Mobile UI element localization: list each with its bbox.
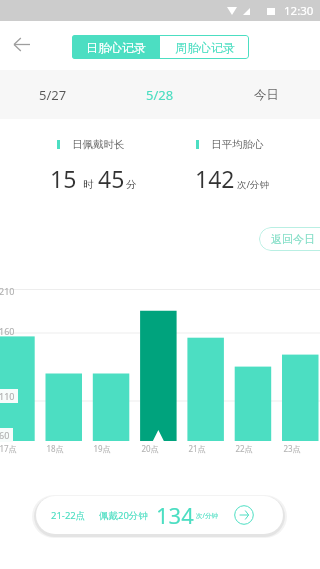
staticText: 45: [98, 163, 125, 194]
staticText: 今日: [254, 87, 279, 103]
staticText: 日平均胎心: [211, 138, 264, 151]
staticText: 日胎心记录: [86, 40, 146, 55]
button[interactable]: 21-22点: [36, 496, 283, 534]
button[interactable]: 日胎心记录: [72, 35, 160, 59]
button[interactable]: 返回今日: [259, 227, 320, 251]
staticText: 时: [83, 178, 94, 191]
staticText: 22点: [235, 443, 253, 454]
staticText: 分: [126, 178, 137, 191]
staticText: 19点: [93, 443, 111, 454]
staticText: 17点: [0, 443, 17, 454]
staticText: 周胎心记录: [175, 40, 235, 55]
staticText: 23点: [283, 443, 301, 454]
staticText: 21-22点: [51, 509, 86, 522]
staticText: 60: [0, 429, 10, 441]
staticText: 佩戴20分钟: [99, 509, 148, 522]
staticText: 12:30: [284, 3, 314, 19]
staticText: 160: [0, 325, 15, 337]
staticText: 21点: [188, 443, 206, 454]
staticText: 次/分钟: [237, 178, 270, 191]
staticText: 18点: [46, 443, 64, 454]
button[interactable]: Back: [6, 29, 36, 59]
staticText: 210: [0, 285, 15, 297]
staticText: 20点: [141, 443, 159, 454]
staticText: 134: [156, 500, 194, 530]
staticText: 返回今日: [271, 232, 315, 246]
staticText: 日佩戴时长: [72, 138, 125, 151]
button[interactable]: 今日: [213, 70, 320, 119]
staticText: 5/27: [39, 86, 67, 104]
button[interactable]: 周胎心记录: [160, 35, 249, 59]
staticText: 110: [0, 390, 15, 402]
staticText: 5/28: [146, 86, 174, 104]
staticText: 15: [50, 163, 77, 194]
staticText: 142: [195, 163, 235, 194]
button[interactable]: 5/28: [106, 70, 213, 119]
staticText: 次/分钟: [196, 511, 218, 520]
button[interactable]: 5/27: [0, 70, 106, 119]
